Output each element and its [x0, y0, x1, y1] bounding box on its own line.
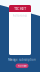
staticText: Renew [17, 64, 26, 67]
staticText: Reference [12, 14, 27, 17]
staticText: Manage subscription [8, 58, 36, 61]
staticText: TICKET [14, 6, 26, 11]
button[interactable]: Renew [15, 63, 28, 68]
